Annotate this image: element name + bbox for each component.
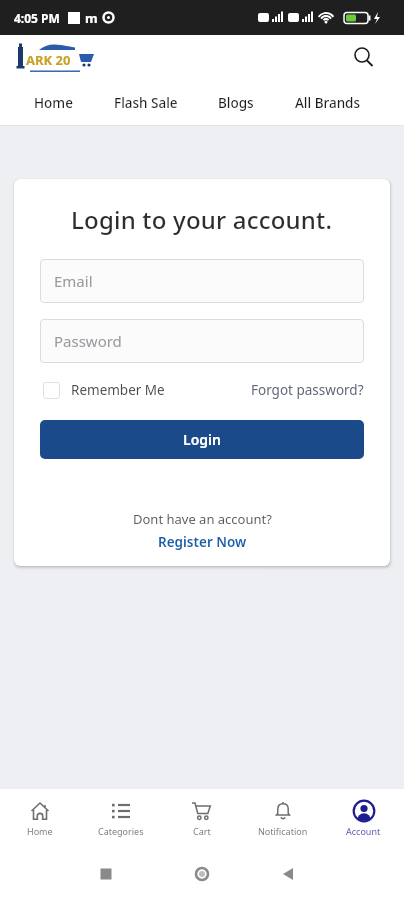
staticText: Flash Sale [114, 94, 178, 112]
staticText: Notification [258, 825, 308, 837]
staticText: Password [54, 331, 122, 351]
button[interactable] [350, 44, 378, 72]
button[interactable]: Flash Sale [114, 94, 178, 112]
staticText: Account [346, 825, 381, 837]
staticText: Forgot password? [251, 381, 364, 399]
button[interactable]: Home [34, 94, 73, 112]
staticText: Home [34, 94, 73, 112]
button[interactable]: Home [0, 789, 80, 848]
button[interactable]: Categories [80, 789, 161, 848]
staticText: Login [183, 430, 221, 449]
button[interactable]: Register Now [158, 533, 247, 551]
button[interactable]: Cart [161, 789, 242, 848]
staticText: Login to your account. [71, 203, 333, 236]
staticText: All Brands [295, 94, 361, 112]
button[interactable]: Notification [242, 789, 323, 848]
staticText: Register Now [158, 533, 247, 551]
staticText: Remember Me [71, 381, 165, 399]
button[interactable]: Login [40, 420, 364, 459]
staticText: ARK 20 [26, 51, 71, 69]
staticText: 4:05 PM [14, 10, 60, 26]
staticText: Home [27, 825, 53, 837]
staticText: Blogs [218, 94, 254, 112]
staticText: Cart [193, 825, 211, 837]
staticText: Categories [98, 825, 144, 837]
button[interactable] [43, 382, 60, 399]
staticText: Dont have an account? [133, 510, 272, 528]
staticText: Email [54, 271, 93, 291]
button[interactable]: Account [323, 789, 404, 848]
button[interactable]: Forgot password? [251, 381, 364, 399]
staticText: m [85, 9, 98, 27]
button[interactable]: All Brands [295, 94, 361, 112]
button[interactable]: Blogs [218, 94, 254, 112]
